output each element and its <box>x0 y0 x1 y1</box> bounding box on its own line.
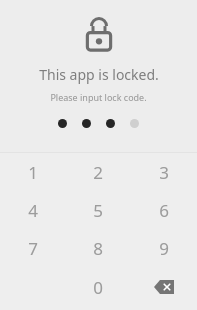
button[interactable]: 7 <box>0 229 65 267</box>
button[interactable]: 2 <box>65 153 131 191</box>
button[interactable]: 9 <box>131 229 197 267</box>
staticText: 9 <box>159 237 169 260</box>
staticText: 6 <box>159 199 169 222</box>
button[interactable]: 8 <box>65 229 131 267</box>
button[interactable]: 4 <box>0 191 65 229</box>
button[interactable]: 5 <box>65 191 131 229</box>
staticText: 7 <box>28 237 38 260</box>
button[interactable]: 1 <box>0 153 65 191</box>
button[interactable]: 6 <box>131 191 197 229</box>
button[interactable]: 3 <box>131 153 197 191</box>
staticText: 2 <box>93 161 103 184</box>
button[interactable]: Backspace <box>131 267 197 307</box>
staticText: 0 <box>93 276 103 299</box>
staticText: 3 <box>159 161 169 184</box>
staticText: Please input lock code. <box>50 91 147 103</box>
button[interactable]: 0 <box>65 267 131 307</box>
staticText: 1 <box>28 161 38 184</box>
staticText: 8 <box>93 237 103 260</box>
staticText: 4 <box>28 199 38 222</box>
staticText: 5 <box>93 199 103 222</box>
staticText: This app is locked. <box>39 65 159 84</box>
